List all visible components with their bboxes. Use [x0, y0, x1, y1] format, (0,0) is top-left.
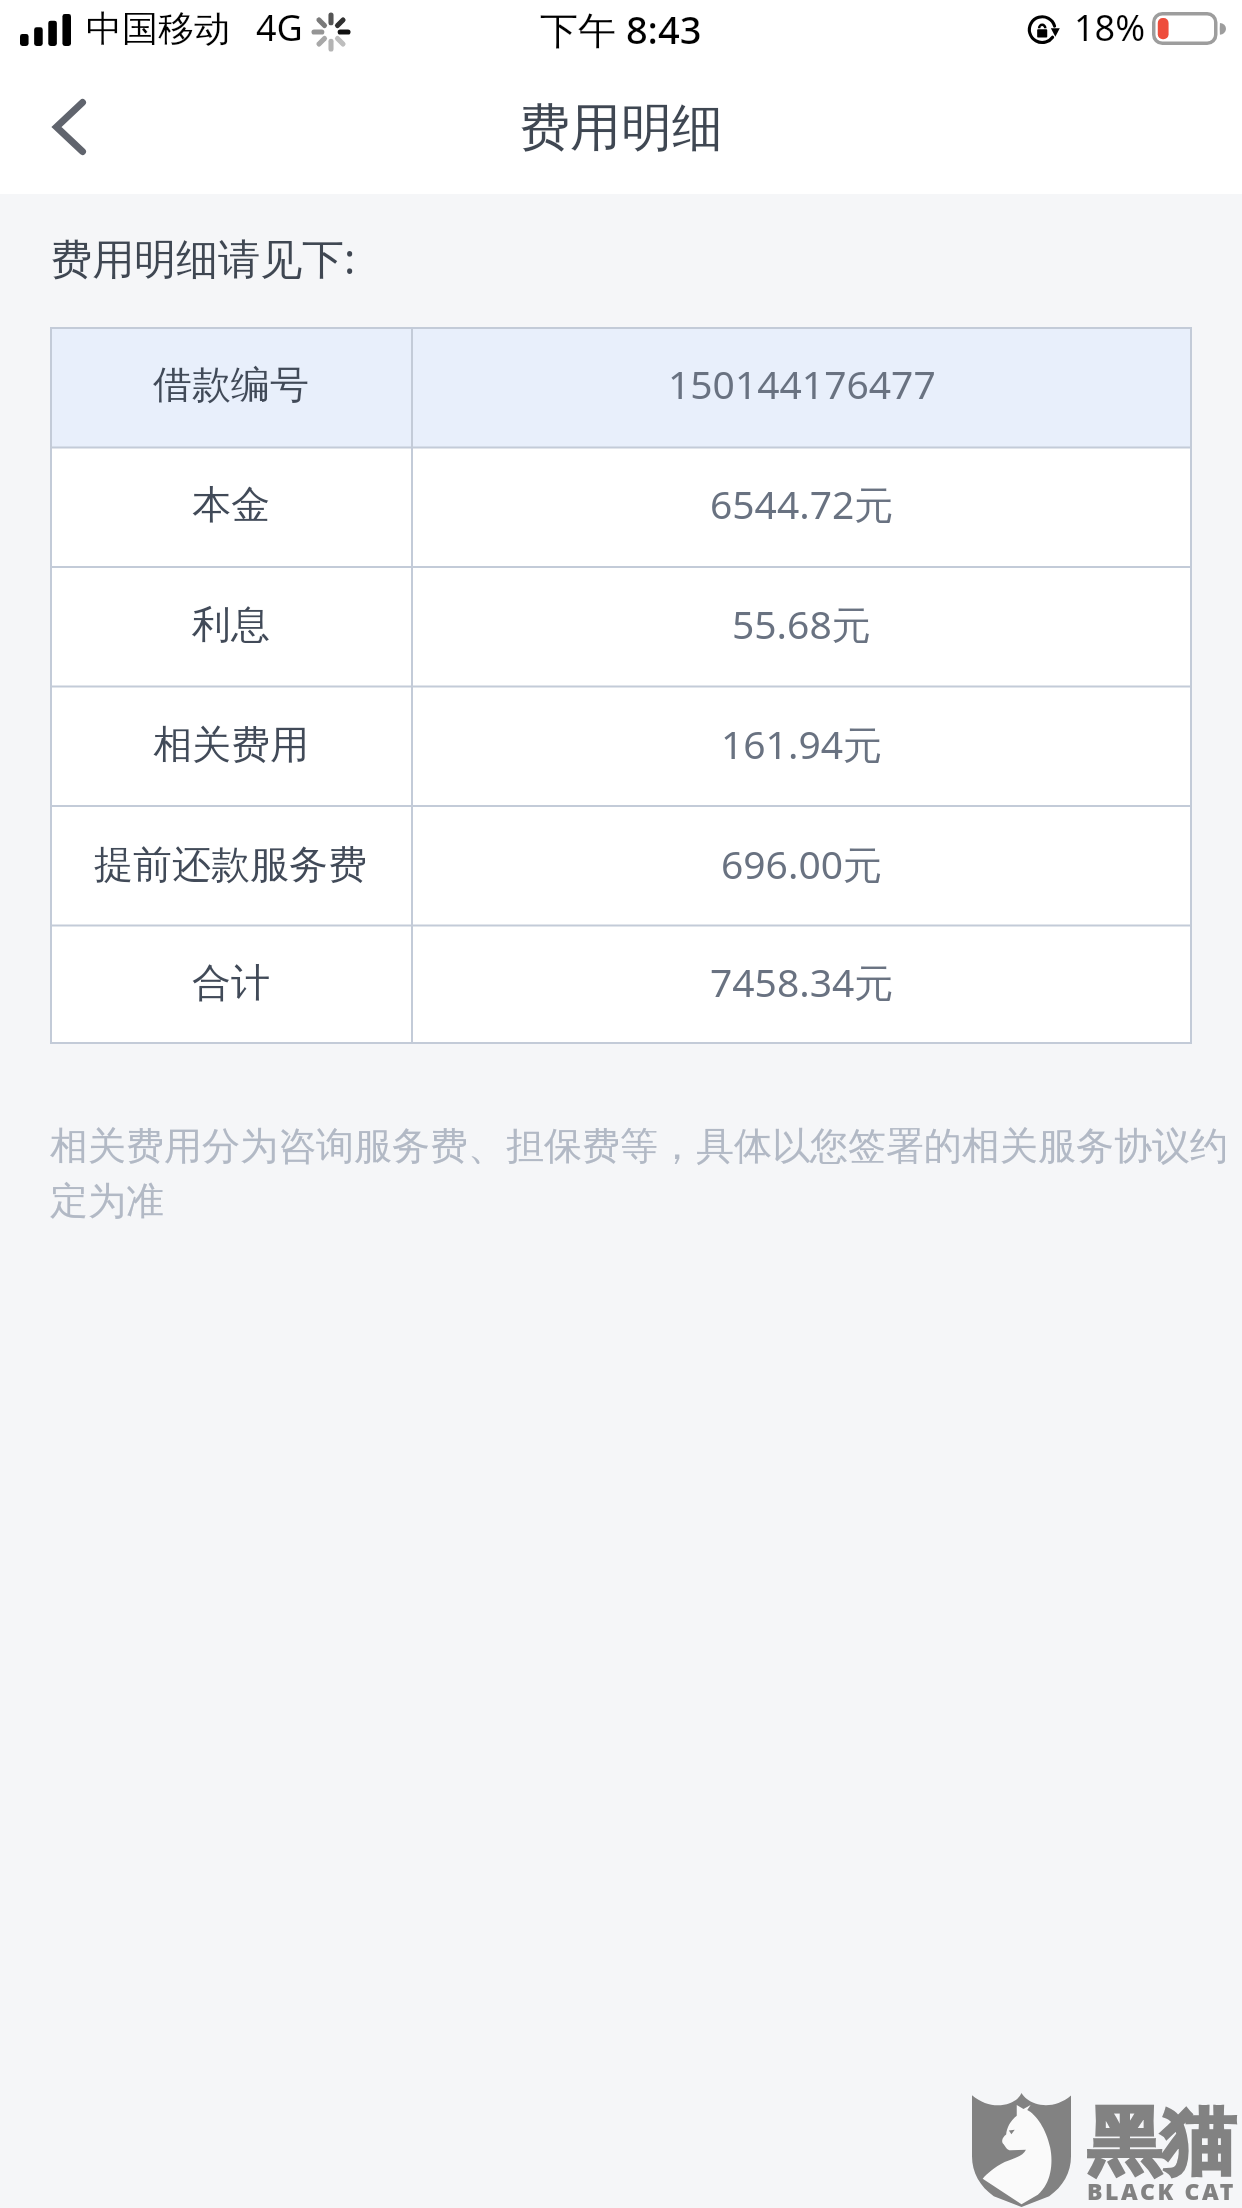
staticText: 本金 — [192, 480, 270, 529]
staticText: 696.00元 — [721, 837, 882, 890]
staticText: 18% — [1074, 3, 1146, 52]
staticText: 中国移动 — [86, 6, 230, 51]
button[interactable]: Back — [0, 63, 132, 194]
staticText: BLACK CAT — [1087, 2175, 1236, 2206]
staticText: 利息 — [192, 600, 270, 649]
staticText: 6544.72元 — [710, 477, 894, 530]
staticText: 下午 8:43 — [540, 3, 702, 55]
staticText: 相关费用 — [153, 720, 309, 769]
staticText: 150144176477 — [668, 357, 936, 410]
staticText: 费用明细请见下: — [50, 229, 356, 286]
staticText: 55.68元 — [732, 597, 871, 650]
staticText: 黑猫 — [1087, 2096, 1235, 2189]
staticText: 4G — [256, 3, 303, 52]
staticText: 相关费用分为咨询服务费、担保费等，具体以您签署的相关服务协议约定为准 — [50, 1122, 1228, 1225]
staticText: 161.94元 — [721, 717, 882, 770]
staticText: 提前还款服务费 — [94, 840, 367, 889]
staticText: 合计 — [192, 958, 270, 1007]
staticText: 费用明细 — [519, 96, 723, 160]
staticText: 7458.34元 — [710, 955, 894, 1008]
staticText: 借款编号 — [153, 360, 309, 409]
